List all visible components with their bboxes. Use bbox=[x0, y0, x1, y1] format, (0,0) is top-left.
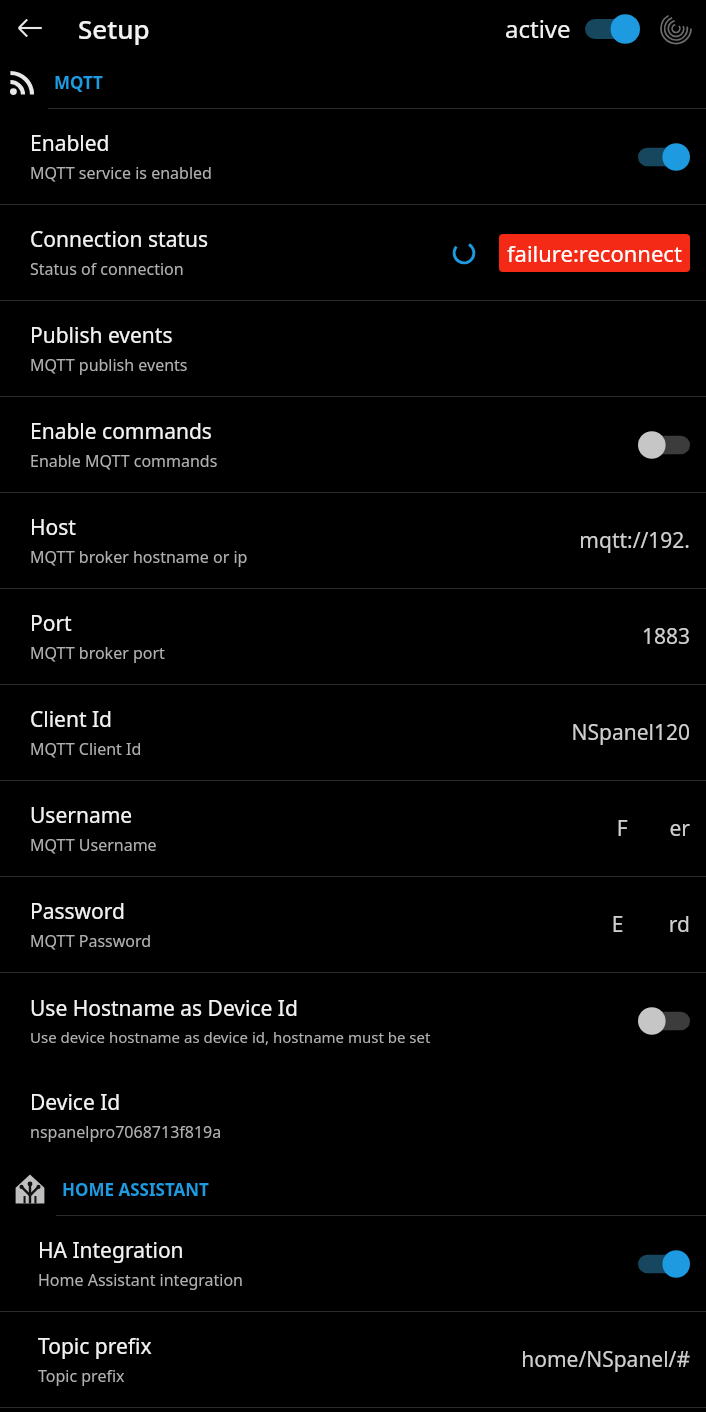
staticText: MQTT bbox=[54, 71, 103, 94]
staticText: Host bbox=[30, 513, 76, 542]
staticText: 1883 bbox=[641, 622, 690, 651]
staticText: failure:reconnect bbox=[507, 238, 682, 268]
staticText: Setup bbox=[78, 11, 150, 46]
button[interactable]: Toggle off bbox=[638, 1006, 690, 1036]
button[interactable]: Fingerprint bbox=[654, 6, 698, 50]
button[interactable]: Enabled bbox=[0, 109, 706, 204]
staticText: MQTT service is enabled bbox=[30, 162, 212, 184]
button[interactable]: Publish events bbox=[0, 301, 706, 396]
button[interactable]: Topic prefix bbox=[0, 1312, 706, 1407]
staticText: MQTT publish events bbox=[30, 354, 188, 376]
button[interactable]: Toggle on bbox=[638, 1249, 690, 1279]
staticText: Enable commands bbox=[30, 417, 212, 446]
staticText: NSpanel120 bbox=[571, 718, 690, 747]
staticText: HA Integration bbox=[38, 1236, 184, 1265]
button[interactable]: Enable commands bbox=[0, 397, 706, 492]
staticText: MQTT Client Id bbox=[30, 738, 142, 760]
button[interactable]: Toggle off bbox=[638, 430, 690, 460]
staticText: nspanelpro7068713f819a bbox=[30, 1121, 222, 1143]
button[interactable]: Client Id bbox=[0, 685, 706, 780]
staticText: mqtt://192. bbox=[579, 526, 690, 555]
staticText: Use device hostname as device id, hostna… bbox=[30, 1027, 431, 1047]
button[interactable]: Username bbox=[0, 781, 706, 876]
staticText: Status of connection bbox=[30, 258, 184, 280]
staticText: Device Id bbox=[30, 1088, 121, 1117]
staticText: Use Hostname as Device Id bbox=[30, 994, 298, 1023]
staticText: Enabled bbox=[30, 129, 110, 158]
staticText: Username bbox=[30, 801, 133, 830]
button[interactable]: Host bbox=[0, 493, 706, 588]
staticText: Topic prefix bbox=[38, 1365, 125, 1387]
button[interactable]: active bbox=[501, 12, 644, 45]
staticText: MQTT Password bbox=[30, 930, 152, 952]
button[interactable]: Toggle on bbox=[638, 142, 690, 172]
button[interactable]: Device Id bbox=[0, 1068, 706, 1163]
staticText: Enable MQTT commands bbox=[30, 450, 218, 472]
staticText: MQTT broker port bbox=[30, 642, 165, 664]
staticText: Connection status bbox=[30, 225, 209, 254]
staticText: MQTT Username bbox=[30, 834, 157, 856]
staticText: Publish events bbox=[30, 321, 173, 350]
staticText: F er bbox=[616, 814, 690, 843]
button[interactable]: Back bbox=[6, 4, 54, 52]
staticText: MQTT broker hostname or ip bbox=[30, 546, 248, 568]
button[interactable]: Use Hostname as Device Id bbox=[0, 973, 706, 1068]
staticText: Client Id bbox=[30, 705, 113, 734]
staticText: HOME ASSISTANT bbox=[62, 1178, 209, 1201]
staticText: Port bbox=[30, 609, 72, 638]
button[interactable]: HOME ASSISTANT bbox=[0, 1163, 706, 1215]
staticText: home/NSpanel/# bbox=[521, 1345, 690, 1374]
button[interactable]: failure:reconnect bbox=[499, 234, 690, 272]
staticText: Home Assistant integration bbox=[38, 1269, 243, 1291]
staticText: Topic prefix bbox=[38, 1332, 152, 1361]
button[interactable]: Connection status bbox=[0, 205, 706, 300]
button[interactable]: Port bbox=[0, 589, 706, 684]
staticText: active bbox=[505, 12, 571, 45]
staticText: E rd bbox=[611, 910, 690, 939]
button[interactable]: MQTT bbox=[0, 56, 706, 108]
button[interactable]: Password bbox=[0, 877, 706, 972]
staticText: Password bbox=[30, 897, 125, 926]
button[interactable]: Toggle on bbox=[585, 13, 640, 45]
button[interactable]: HA Integration bbox=[0, 1216, 706, 1311]
